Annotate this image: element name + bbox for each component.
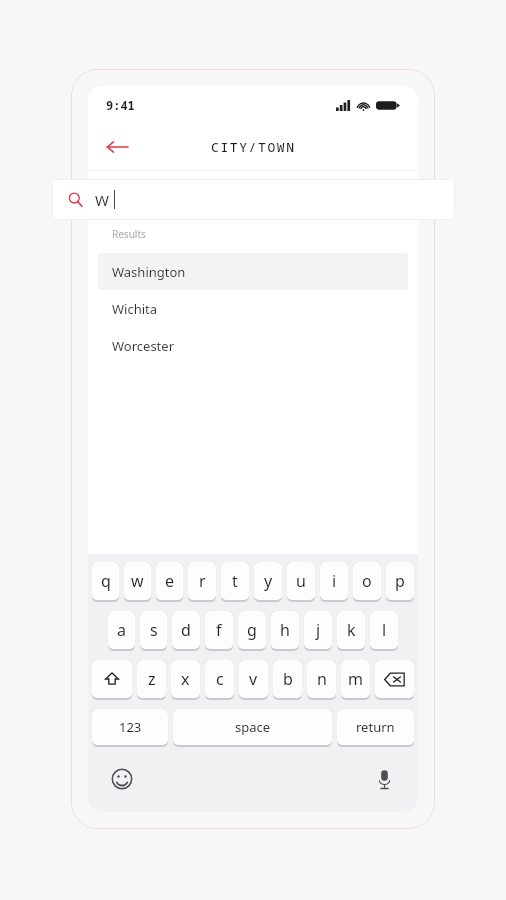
button[interactable]: Shift — [92, 660, 132, 698]
staticText: g — [247, 619, 257, 641]
button[interactable]: Back — [100, 130, 134, 164]
staticText: Washington — [112, 263, 186, 281]
button[interactable]: 123 — [92, 709, 168, 745]
button[interactable]: t — [221, 562, 249, 600]
button[interactable]: q — [92, 562, 119, 600]
button[interactable]: w — [124, 562, 151, 600]
button[interactable]: a — [108, 611, 135, 649]
staticText: u — [296, 570, 306, 592]
staticText: 123 — [119, 718, 142, 736]
staticText: m — [348, 668, 363, 690]
staticText: z — [148, 668, 156, 690]
button[interactable]: r — [188, 562, 216, 600]
staticText: w — [131, 570, 144, 592]
staticText: Wichita — [112, 300, 158, 318]
staticText: c — [216, 668, 224, 690]
button[interactable]: i — [320, 562, 348, 600]
button[interactable]: Voice input — [368, 763, 400, 795]
button[interactable]: v — [239, 660, 268, 698]
staticText: s — [150, 619, 158, 641]
button[interactable]: return — [337, 709, 414, 745]
staticText: b — [283, 668, 293, 690]
staticText: l — [382, 619, 387, 641]
staticText: a — [117, 619, 126, 641]
staticText: W — [95, 190, 109, 210]
button[interactable]: Washington — [98, 253, 408, 290]
button[interactable]: n — [307, 660, 336, 698]
button[interactable]: d — [172, 611, 200, 649]
staticText: n — [317, 668, 327, 690]
button[interactable]: m — [341, 660, 370, 698]
button[interactable]: Wichita — [98, 290, 408, 327]
staticText: r — [199, 570, 206, 592]
staticText: f — [216, 619, 222, 641]
button[interactable]: o — [353, 562, 381, 600]
staticText: Worcester — [112, 337, 174, 355]
button[interactable]: x — [171, 660, 200, 698]
button[interactable]: e — [156, 562, 183, 600]
button[interactable]: Emoji — [106, 763, 138, 795]
staticText: space — [235, 718, 271, 736]
staticText: v — [249, 668, 258, 690]
button[interactable]: c — [205, 660, 234, 698]
button[interactable]: g — [238, 611, 266, 649]
staticText: CITY/TOWN — [211, 138, 296, 156]
button[interactable]: p — [386, 562, 414, 600]
button[interactable]: W — [52, 179, 455, 220]
button[interactable]: h — [271, 611, 299, 649]
button[interactable]: j — [304, 611, 332, 649]
button[interactable]: b — [273, 660, 302, 698]
button[interactable]: Worcester — [98, 327, 408, 364]
staticText: q — [101, 570, 111, 592]
button[interactable]: u — [287, 562, 315, 600]
staticText: p — [395, 570, 405, 592]
staticText: t — [232, 570, 238, 592]
staticText: j — [316, 619, 321, 641]
staticText: i — [332, 570, 337, 592]
staticText: e — [165, 570, 175, 592]
staticText: Results — [112, 227, 146, 241]
staticText: y — [264, 570, 273, 592]
button[interactable]: k — [337, 611, 365, 649]
staticText: x — [181, 668, 190, 690]
staticText: d — [181, 619, 191, 641]
button[interactable]: Backspace — [375, 660, 414, 698]
staticText: o — [362, 570, 372, 592]
staticText: 9:41 — [106, 97, 135, 113]
button[interactable]: y — [254, 562, 282, 600]
button[interactable]: f — [205, 611, 233, 649]
staticText: return — [356, 718, 395, 736]
staticText: k — [347, 619, 356, 641]
staticText: h — [280, 619, 290, 641]
button[interactable]: space — [173, 709, 332, 745]
button[interactable]: z — [137, 660, 166, 698]
button[interactable]: s — [140, 611, 167, 649]
button[interactable]: l — [370, 611, 398, 649]
